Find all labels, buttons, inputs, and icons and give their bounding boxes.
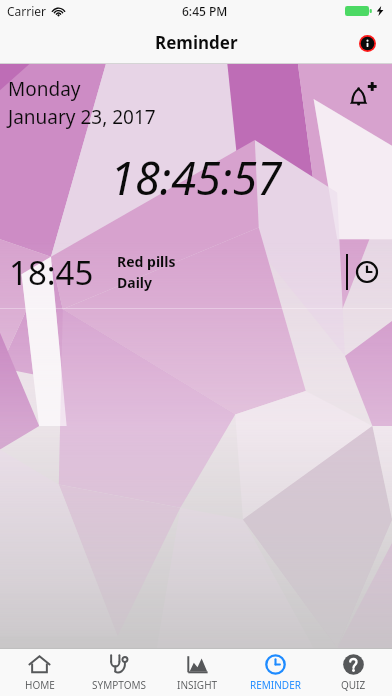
staticText: 18:45:57 <box>110 147 282 208</box>
button[interactable]: SYMPTOMS <box>79 649 158 696</box>
staticText: HOME <box>25 678 55 692</box>
button[interactable]: Info <box>352 28 382 58</box>
staticText: SYMPTOMS <box>92 678 146 692</box>
staticText: Carrier <box>7 3 47 19</box>
button[interactable]: QUIZ <box>314 649 392 696</box>
staticText: QUIZ <box>341 678 366 692</box>
staticText: 6:45 PM <box>182 3 228 19</box>
staticText: Red pills <box>117 252 176 271</box>
button[interactable]: Add reminder <box>338 72 386 120</box>
button[interactable]: INSIGHT <box>158 649 236 696</box>
button[interactable]: 18:45 <box>0 236 392 308</box>
button[interactable]: REMINDER <box>236 649 314 696</box>
staticText: INSIGHT <box>177 678 218 692</box>
staticText: Daily <box>117 273 152 292</box>
staticText: January 23, 2017 <box>8 104 156 130</box>
staticText: 18:45 <box>9 250 94 295</box>
button[interactable]: HOME <box>0 649 79 696</box>
staticText: Reminder <box>155 31 238 54</box>
staticText: Monday <box>8 76 81 102</box>
staticText: REMINDER <box>250 678 301 692</box>
